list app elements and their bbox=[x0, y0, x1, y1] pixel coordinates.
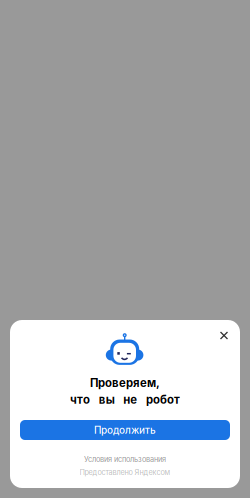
staticText: Предоставлено Яндексом bbox=[79, 468, 170, 477]
staticText: Условия использования bbox=[84, 455, 166, 464]
button[interactable]: Close bbox=[214, 325, 234, 345]
staticText: Проверяем, bbox=[90, 376, 160, 390]
staticText: что bbox=[70, 393, 90, 406]
button[interactable]: Условия использования bbox=[10, 455, 240, 464]
staticText: робот bbox=[146, 393, 180, 406]
staticText: вы bbox=[99, 393, 115, 406]
staticText: не bbox=[123, 393, 137, 406]
staticText: Продолжить bbox=[94, 424, 156, 436]
button[interactable]: Продолжить bbox=[20, 420, 230, 440]
